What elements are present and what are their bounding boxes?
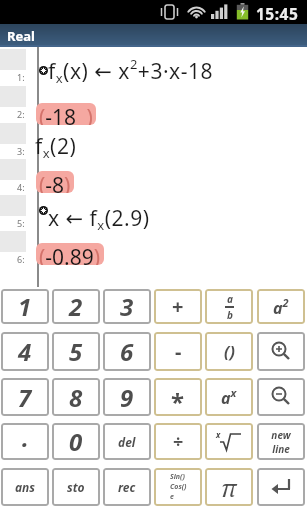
button[interactable]: 0: [52, 423, 100, 460]
button[interactable]: *: [154, 378, 202, 416]
button[interactable]: (): [205, 332, 253, 371]
staticText: 1: [18, 290, 32, 323]
staticText: new line: [271, 428, 291, 456]
staticText: 4:: [17, 181, 25, 193]
staticText: 9: [120, 381, 134, 414]
staticText: (-18 ): [39, 103, 93, 125]
staticText: 0: [69, 425, 83, 458]
staticText: Sin() Cos() e: [170, 472, 187, 502]
staticText: (-0.89): [39, 243, 101, 265]
staticText: ax: [221, 385, 237, 409]
button[interactable]: del: [103, 423, 151, 460]
staticText: 5: [69, 335, 83, 368]
button[interactable]: rec: [103, 468, 151, 506]
staticText: x ← fx(2.9): [48, 204, 150, 234]
staticText: π: [221, 471, 237, 504]
button[interactable]: [257, 378, 305, 416]
button[interactable]: ans: [1, 468, 49, 506]
button[interactable]: ÷: [154, 423, 202, 460]
button[interactable]: 2: [52, 289, 100, 324]
button[interactable]: 4: [1, 332, 49, 371]
staticText: ans: [15, 479, 36, 495]
staticText: 2:: [17, 108, 25, 120]
button[interactable]: 5: [52, 332, 100, 371]
button[interactable]: ax: [205, 378, 253, 416]
staticText: fx(2): [35, 132, 77, 162]
staticText: x: [216, 429, 221, 440]
staticText: 6: [120, 335, 134, 368]
button[interactable]: [257, 332, 305, 371]
button[interactable]: new line: [257, 423, 305, 460]
button[interactable]: Sin() Cos() e: [154, 468, 202, 506]
staticText: rec: [118, 479, 136, 495]
staticText: 3:: [17, 145, 25, 157]
staticText: 3: [120, 290, 134, 323]
staticText: sto: [67, 479, 85, 495]
button[interactable]: [257, 468, 305, 506]
staticText: (-8): [39, 171, 71, 193]
staticText: -: [175, 338, 182, 365]
staticText: (): [224, 341, 235, 363]
staticText: +: [172, 293, 184, 320]
staticText: .: [22, 423, 29, 454]
button[interactable]: +: [154, 289, 202, 324]
staticText: fx(x) ← x2+3·x-18: [48, 55, 213, 87]
staticText: 7: [18, 381, 32, 414]
button[interactable]: 9: [103, 378, 151, 416]
button[interactable]: 1: [1, 289, 49, 324]
button[interactable]: π: [205, 468, 253, 506]
staticText: *: [171, 385, 185, 416]
button[interactable]: 8: [52, 378, 100, 416]
button[interactable]: 6: [103, 332, 151, 371]
staticText: a: [227, 292, 233, 306]
staticText: Real: [7, 27, 35, 45]
button[interactable]: sto: [52, 468, 100, 506]
staticText: del: [118, 434, 136, 450]
button[interactable]: x: [205, 423, 253, 460]
button[interactable]: -: [154, 332, 202, 371]
staticText: a2: [273, 295, 289, 319]
staticText: 6:: [17, 253, 25, 265]
button[interactable]: 7: [1, 378, 49, 416]
staticText: 15:45: [256, 3, 299, 24]
staticText: 8: [69, 381, 83, 414]
staticText: b: [227, 308, 233, 322]
staticText: 4: [18, 335, 32, 368]
button[interactable]: a: [205, 289, 253, 324]
button[interactable]: .: [1, 423, 49, 460]
staticText: 2: [69, 290, 83, 323]
staticText: 5:: [17, 217, 25, 229]
button[interactable]: a2: [257, 289, 305, 324]
button[interactable]: 3: [103, 289, 151, 324]
staticText: ÷: [173, 429, 184, 454]
staticText: 1:: [17, 71, 25, 83]
